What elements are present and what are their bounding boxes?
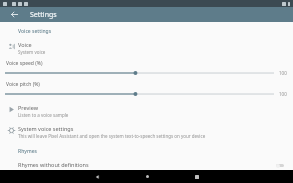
staticText: Preview [18,104,39,111]
button[interactable]: Preview [0,100,293,121]
staticText: Voice pitch (%) [6,81,40,88]
staticText: Voice settings [18,28,52,35]
button[interactable]: Rhymes without definitions [0,157,293,170]
staticText: Listen to a voice sample [18,112,69,118]
staticText: Settings [30,10,57,20]
staticText: This will leave Pixel Assistant and open… [18,133,206,139]
staticText: System voice [18,49,46,55]
staticText: Voice [18,41,32,48]
button[interactable]: System voice settings [0,121,293,142]
staticText: Rhymes [18,148,37,155]
staticText: Voice speed (%) [6,60,43,67]
staticText: Rhymes without definitions [18,161,89,168]
staticText: 100 [279,91,287,97]
button[interactable]: Home [133,170,161,183]
staticText: System voice settings [18,125,74,132]
button[interactable]: Back [6,7,22,22]
button[interactable]: Voice pitch (%) [0,79,293,100]
button[interactable]: Back [83,170,111,183]
button[interactable]: Toggle Rhymes without definitions [275,163,285,168]
button[interactable]: Voice [0,37,293,58]
staticText: 100 [279,70,287,76]
button[interactable]: Voice speed (%) [0,58,293,79]
button[interactable]: Recent apps [183,170,211,183]
